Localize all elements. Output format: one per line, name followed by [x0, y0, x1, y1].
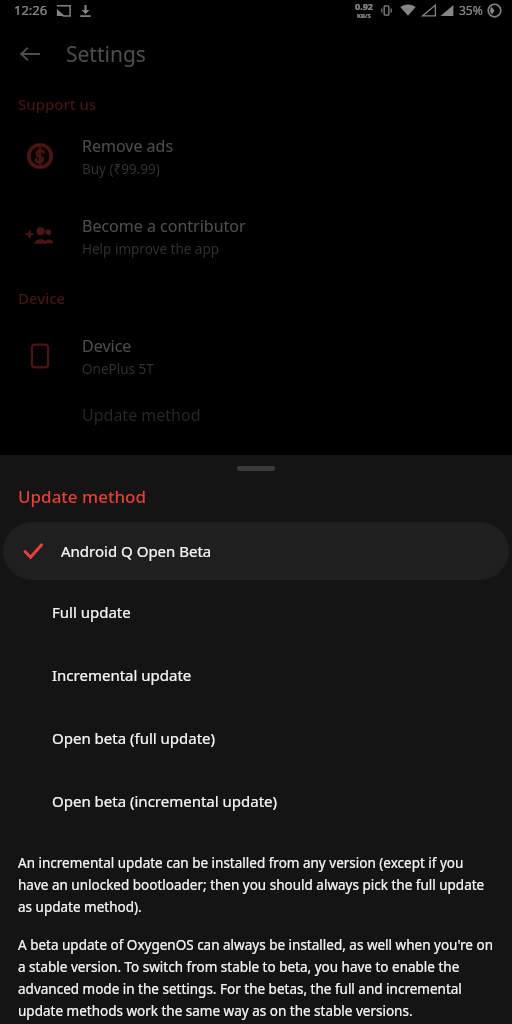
staticText: Buy (₹99.99): [82, 160, 160, 178]
staticText: 0.92: [355, 0, 373, 12]
button[interactable]: Open beta (incremental update): [0, 769, 512, 832]
staticText: A beta update of OxygenOS can always be …: [18, 936, 494, 1020]
staticText: 12:26: [14, 1, 48, 19]
staticText: OnePlus 5T: [82, 360, 154, 378]
staticText: Support us: [18, 94, 97, 114]
staticText: Update method: [18, 485, 146, 508]
staticText: Remove ads: [82, 135, 174, 157]
button[interactable]: Become a contributor: [0, 210, 512, 262]
button[interactable]: Device: [0, 330, 512, 382]
button[interactable]: Remove ads: [0, 130, 512, 182]
staticText: Android Q Open Beta: [61, 541, 212, 561]
staticText: Full update: [52, 602, 131, 622]
button[interactable]: Selected: [3, 522, 509, 580]
staticText: An incremental update can be installed f…: [18, 854, 494, 916]
button[interactable]: Back: [8, 32, 52, 76]
staticText: Help improve the app: [82, 240, 220, 258]
staticText: Device: [82, 335, 132, 357]
button[interactable]: Incremental update: [0, 643, 512, 706]
button[interactable]: Full update: [0, 580, 512, 643]
staticText: Settings: [66, 40, 146, 69]
staticText: Update method: [82, 404, 201, 426]
staticText: Device: [18, 288, 66, 308]
staticText: KB/S: [357, 12, 371, 20]
staticText: Incremental update: [52, 665, 192, 685]
other: Selected: [21, 539, 45, 563]
staticText: 35%: [459, 2, 483, 18]
button[interactable]: Open beta (full update): [0, 706, 512, 769]
staticText: Become a contributor: [82, 215, 246, 237]
staticText: Open beta (incremental update): [52, 791, 278, 811]
staticText: Open beta (full update): [52, 728, 216, 748]
